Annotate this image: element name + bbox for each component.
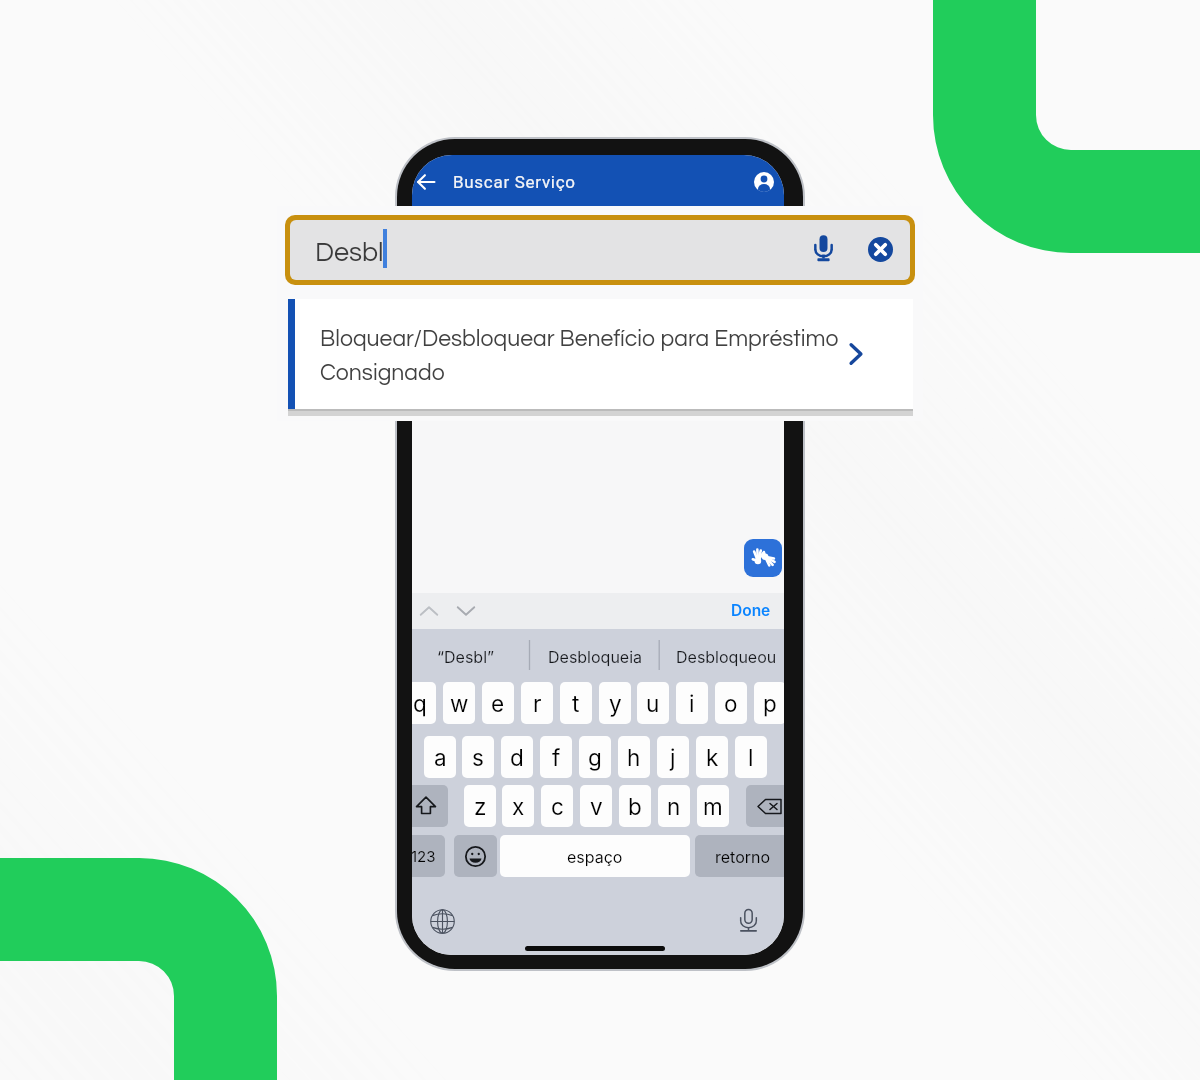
button[interactable]: u [637,682,669,724]
staticText: q [413,690,427,717]
button[interactable]: m [697,785,729,827]
button[interactable]: o [715,682,747,724]
staticText: d [510,744,524,771]
button[interactable]: Busca por voz [804,229,843,268]
button[interactable]: 123 [412,835,445,877]
button[interactable]: Trocar idioma [427,906,457,936]
button[interactable]: h [618,736,650,778]
staticText: u [646,690,660,717]
button[interactable]: Limpar busca [861,230,900,269]
staticText: y [609,690,622,717]
staticText: 123 [412,847,436,865]
staticText: k [706,744,719,771]
button[interactable]: shift [412,785,448,827]
button[interactable]: Done [731,601,771,620]
button[interactable]: retorno [695,835,784,877]
button[interactable]: Campo anterior [416,598,442,624]
staticText: Done [731,601,771,620]
button[interactable]: espaço [500,835,690,877]
staticText: j [670,744,676,771]
staticText: o [724,690,738,717]
button[interactable]: z [464,785,496,827]
staticText: z [474,793,487,820]
staticText: w [450,690,469,717]
staticText: f [552,744,561,771]
staticText: p [763,690,777,717]
button[interactable]: a [424,736,456,778]
button[interactable]: g [579,736,611,778]
staticText: h [627,744,641,771]
staticText: Desbl [315,239,384,267]
staticText: s [472,744,484,771]
button[interactable]: f [540,736,572,778]
staticText: b [628,793,642,820]
button[interactable]: Próximo campo [453,598,479,624]
button[interactable]: j [657,736,689,778]
staticText: v [590,793,603,820]
button[interactable]: s [462,736,494,778]
button[interactable]: Bloquear/Desbloquear Benefício para Empr… [288,299,913,409]
button[interactable]: VLibras [744,539,782,577]
button[interactable]: x [502,785,534,827]
button[interactable]: Ditado [733,905,763,935]
staticText: Desbloqueou [676,647,777,666]
button[interactable]: Desbl [285,215,915,285]
staticText: r [533,690,542,717]
button[interactable]: emoji [454,835,497,877]
staticText: n [667,793,681,820]
staticText: retorno [715,847,771,866]
staticText: a [434,744,447,771]
button[interactable]: w [443,682,475,724]
button[interactable]: p [754,682,784,724]
staticText: g [588,744,602,771]
button[interactable]: Desbloqueia [533,631,657,681]
button[interactable]: y [599,682,631,724]
button[interactable]: “Desbl” [412,631,528,681]
button[interactable]: i [676,682,708,724]
staticText: “Desbl” [437,647,495,666]
staticText: Buscar Serviço [453,172,576,192]
button[interactable]: b [619,785,651,827]
staticText: espaço [567,847,623,866]
staticText: x [512,793,525,820]
button[interactable]: Voltar [413,169,439,195]
button[interactable]: Desbloqueou [664,631,784,681]
staticText: e [491,690,505,717]
button[interactable]: d [501,736,533,778]
button[interactable]: e [482,682,514,724]
button[interactable]: l [735,736,767,778]
staticText: l [748,744,754,771]
button[interactable]: Conta [749,167,779,197]
staticText: c [551,793,564,820]
button[interactable]: r [521,682,553,724]
button[interactable]: t [560,682,592,724]
staticText: i [689,690,695,717]
button[interactable]: v [580,785,612,827]
staticText: t [572,690,580,717]
staticText: Bloquear/Desbloquear Benefício para Empr… [320,327,855,384]
button[interactable]: n [658,785,690,827]
button[interactable]: c [541,785,573,827]
button[interactable]: q [412,682,436,724]
staticText: Desbloqueia [548,647,643,666]
button[interactable]: del [746,785,784,827]
staticText: m [703,793,723,820]
button[interactable]: k [696,736,728,778]
